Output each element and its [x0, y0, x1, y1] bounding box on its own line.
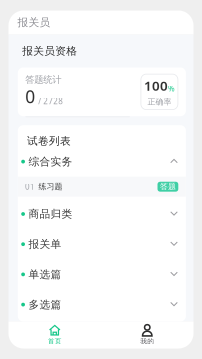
staticText: 答题统计 [25, 74, 61, 85]
button[interactable]: 首页 [8, 325, 101, 345]
button[interactable]: 我的 [101, 325, 193, 345]
button[interactable]: 单选篇 [18, 259, 186, 289]
staticText: 试卷列表 [27, 134, 71, 147]
button[interactable]: 报关单 [18, 229, 186, 259]
staticText: 0 [25, 85, 35, 108]
staticText: 正确率 [147, 97, 171, 107]
staticText: 综合实务 [28, 155, 72, 168]
staticText: 多选篇 [28, 298, 61, 311]
staticText: 报关单 [28, 238, 61, 251]
staticText: 练习题 [38, 182, 62, 192]
button[interactable]: 综合实务 [18, 146, 186, 177]
button[interactable]: 商品归类 [18, 199, 186, 229]
staticText: 100 [144, 77, 168, 94]
staticText: 我的 [140, 337, 154, 345]
staticText: 商品归类 [28, 207, 72, 220]
staticText: 报关员 [17, 16, 50, 29]
staticText: 答题 [160, 182, 176, 192]
button[interactable]: 01 [18, 177, 186, 197]
staticText: 01 [25, 181, 35, 192]
staticText: 首页 [48, 337, 62, 345]
staticText: % [168, 83, 175, 94]
button[interactable]: 多选篇 [18, 289, 186, 320]
staticText: 单选篇 [28, 268, 61, 281]
staticText: 报关员资格 [22, 44, 77, 57]
staticText: / 2728 [38, 96, 63, 106]
